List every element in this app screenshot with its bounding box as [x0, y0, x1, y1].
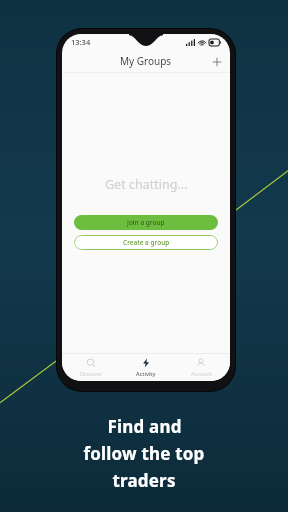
staticText: Activity [136, 370, 156, 377]
button[interactable]: Join a group [74, 215, 218, 230]
button[interactable]: Activity [120, 354, 172, 381]
button[interactable]: Discover [65, 354, 117, 381]
staticText: 13:34 [71, 37, 91, 47]
staticText: Create a group [123, 238, 170, 247]
staticText: Join a group [127, 218, 165, 227]
staticText: Discover [80, 370, 103, 377]
button[interactable]: Create a group [74, 235, 218, 250]
staticText: Account [191, 370, 212, 377]
staticText: My Groups [120, 54, 172, 68]
staticText: Find and [107, 415, 182, 438]
staticText: traders [112, 469, 176, 492]
staticText: follow the top [83, 442, 205, 465]
staticText: Get chatting... [105, 176, 188, 193]
button[interactable]: Account [175, 354, 227, 381]
button[interactable]: Add group [208, 53, 225, 70]
